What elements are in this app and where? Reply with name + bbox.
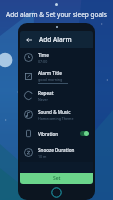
button[interactable]: Snooze Duration: [20, 143, 93, 162]
staticText: Alarm Title: [38, 70, 62, 76]
staticText: Never: [38, 97, 49, 102]
staticText: Homecoming Theme: [38, 116, 74, 121]
staticText: 07:00: [38, 59, 48, 64]
staticText: good morning: [38, 77, 63, 82]
button[interactable]: Home: [51, 187, 62, 198]
staticText: Add alarm & Set your sleep goals: [6, 10, 107, 19]
button[interactable]: Set: [20, 173, 93, 184]
button[interactable]: Sound & Music: [20, 105, 93, 124]
staticText: 10 m: [38, 154, 47, 159]
staticText: Repeat: [38, 90, 54, 96]
staticText: Snooze Duration: [38, 147, 75, 153]
staticText: Time: [38, 52, 49, 58]
button[interactable]: Alarm Title: [20, 67, 93, 86]
button[interactable]: Time: [20, 48, 93, 67]
button[interactable]: Vibration toggle: [80, 131, 89, 136]
staticText: Set: [53, 175, 61, 182]
staticText: Sound & Music: [38, 109, 71, 115]
staticText: Vibration: [38, 131, 59, 137]
button[interactable]: Repeat: [20, 86, 93, 105]
button[interactable]: Back: [24, 35, 34, 45]
button[interactable]: Vibration: [20, 124, 93, 143]
staticText: Add Alarm: [39, 35, 72, 44]
